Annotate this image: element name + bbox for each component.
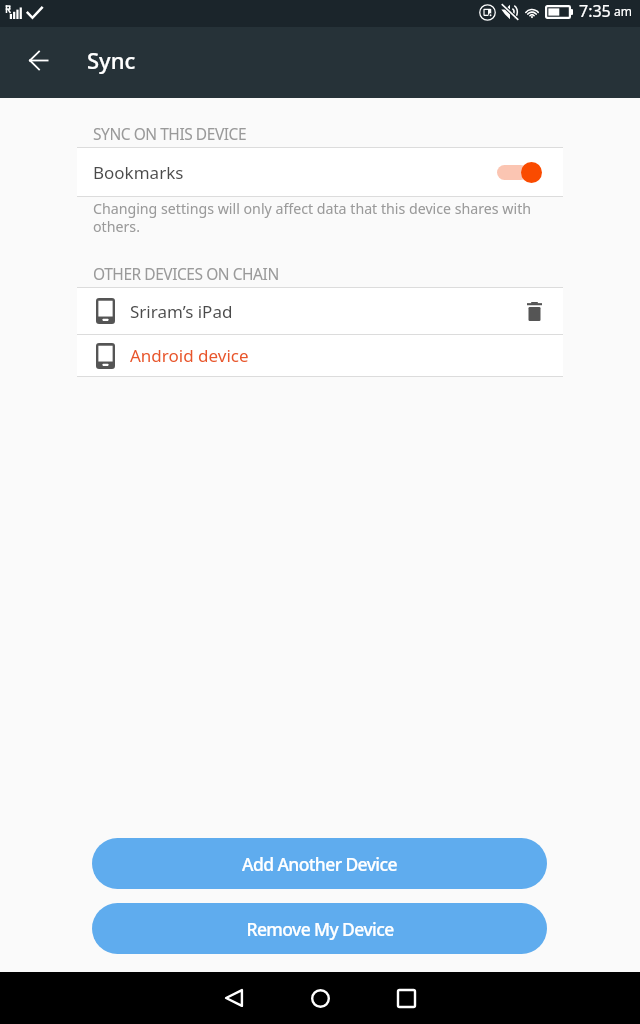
staticText: Bookmarks [93,161,184,184]
button[interactable]: Android device [77,335,563,376]
button[interactable]: Recents [363,972,449,1024]
button[interactable]: Remove My Device [92,903,547,954]
staticText: SYNC ON THIS DEVICE [93,123,247,144]
button[interactable]: Bookmarks [77,148,563,196]
button[interactable]: Delete device [519,296,549,326]
staticText: Add Another Device [242,852,397,876]
button[interactable]: Add Another Device [92,838,547,889]
staticText: Remove My Device [246,917,394,941]
staticText: Sync [87,45,136,75]
staticText: Android device [130,344,249,367]
button[interactable]: Back [191,972,277,1024]
staticText: 7:35 [579,0,611,22]
button[interactable]: Home [277,972,363,1024]
staticText: Sriram’s iPad [130,300,233,323]
staticText: OTHER DEVICES ON CHAIN [93,263,279,284]
staticText: am [611,3,633,19]
button[interactable]: Bookmarks sync toggle [497,160,543,184]
button[interactable]: Sriram’s iPad [77,288,563,334]
staticText: Changing settings will only affect data … [93,199,552,236]
button[interactable]: Back [0,27,77,98]
